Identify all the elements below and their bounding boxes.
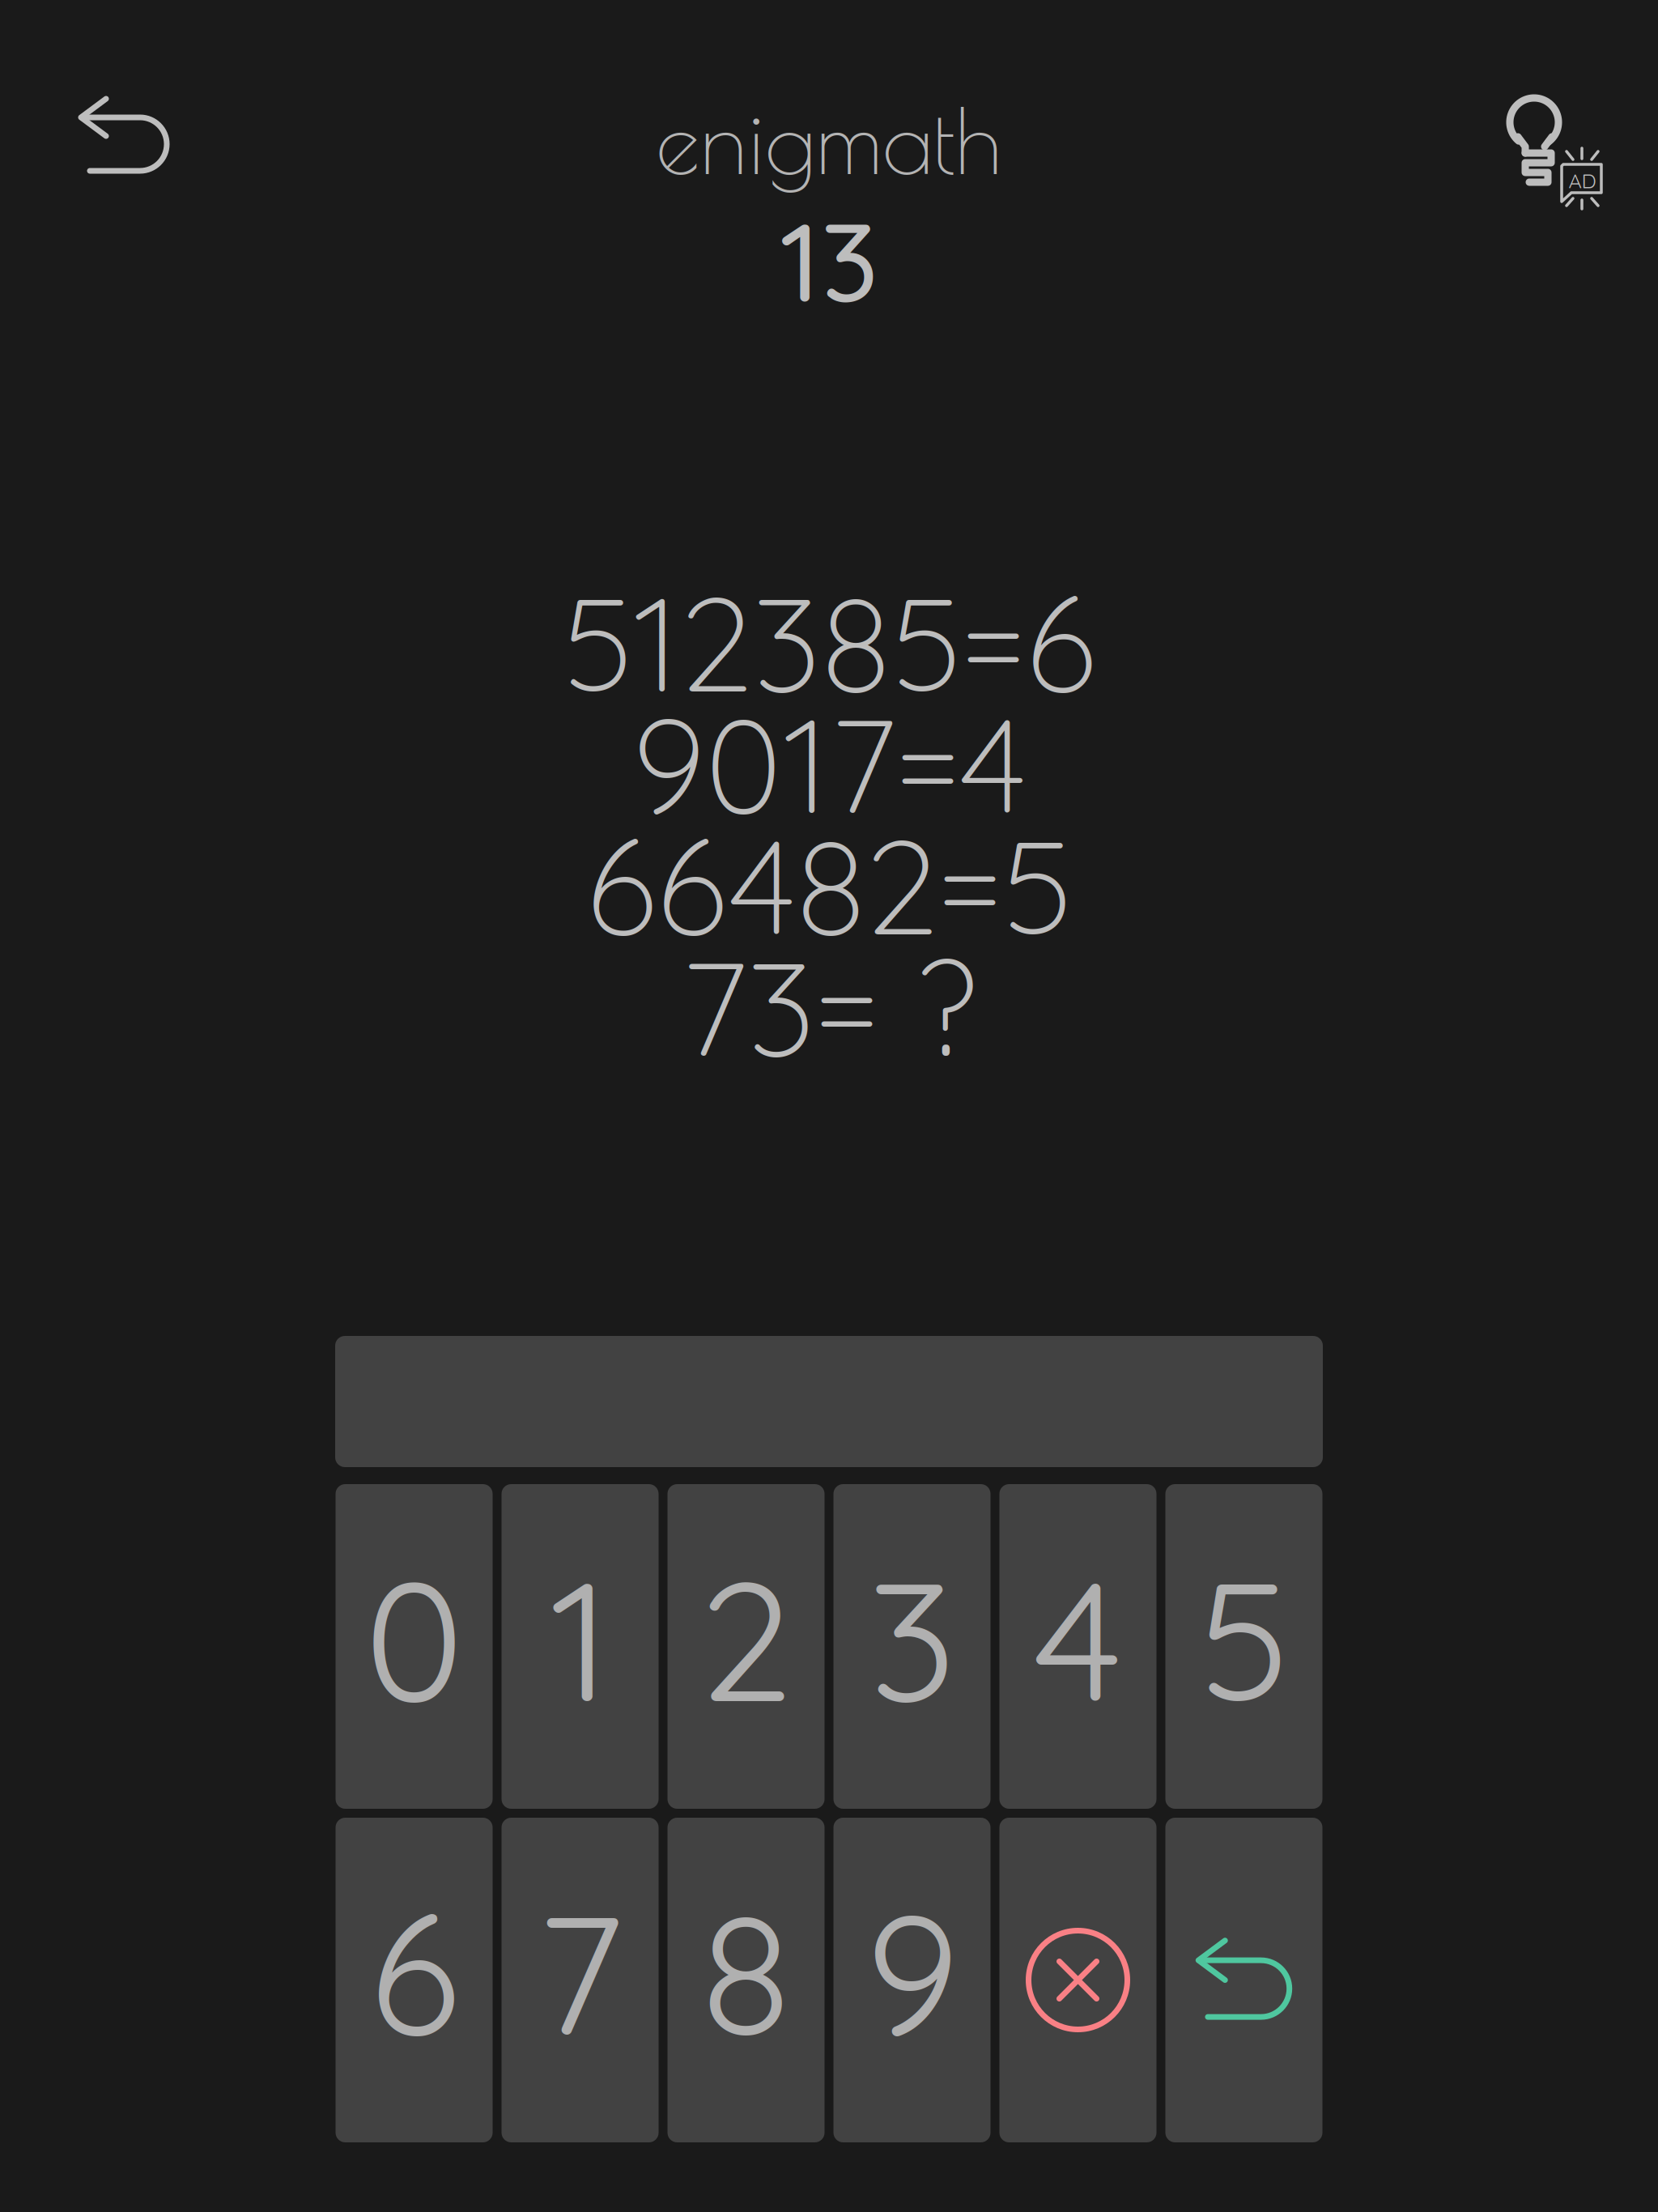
button[interactable]: Back xyxy=(0,98,168,174)
staticText: 2 xyxy=(700,1534,792,1743)
staticText: 7 xyxy=(537,1867,623,2076)
button[interactable]: Clear xyxy=(999,1818,1156,2142)
button[interactable]: 2 xyxy=(667,1484,825,1809)
staticText: 1 xyxy=(549,1534,611,1743)
staticText: 13 xyxy=(780,193,878,329)
staticText: 0 xyxy=(364,1534,464,1743)
staticText: 66482=5 xyxy=(586,803,1072,967)
button[interactable]: 3 xyxy=(833,1484,991,1809)
button[interactable]: 6 xyxy=(336,1818,493,2142)
staticText: 6 xyxy=(369,1867,459,2076)
staticText: 512385=6 xyxy=(562,560,1096,724)
staticText: 5 xyxy=(1198,1534,1290,1743)
staticText: 4 xyxy=(1034,1534,1122,1743)
button[interactable]: 5 xyxy=(1165,1484,1322,1809)
button[interactable]: 0 xyxy=(336,1484,493,1809)
staticText: enigmath xyxy=(656,89,1002,193)
button[interactable]: 8 xyxy=(667,1818,825,2142)
staticText: 3 xyxy=(868,1534,956,1743)
button[interactable]: 9 xyxy=(833,1818,991,2142)
staticText: 8 xyxy=(701,1867,791,2076)
button[interactable]: Undo xyxy=(1165,1818,1322,2142)
staticText: 9 xyxy=(865,1867,959,2076)
button[interactable]: 7 xyxy=(502,1818,659,2142)
staticText: 73= ? xyxy=(681,924,977,1089)
button[interactable]: 1 xyxy=(502,1484,659,1809)
staticText: 9017=4 xyxy=(632,681,1026,846)
staticText: AD xyxy=(1569,168,1596,193)
button[interactable]: Hint — watch an ad xyxy=(1505,77,1658,195)
button[interactable]: 4 xyxy=(999,1484,1156,1809)
